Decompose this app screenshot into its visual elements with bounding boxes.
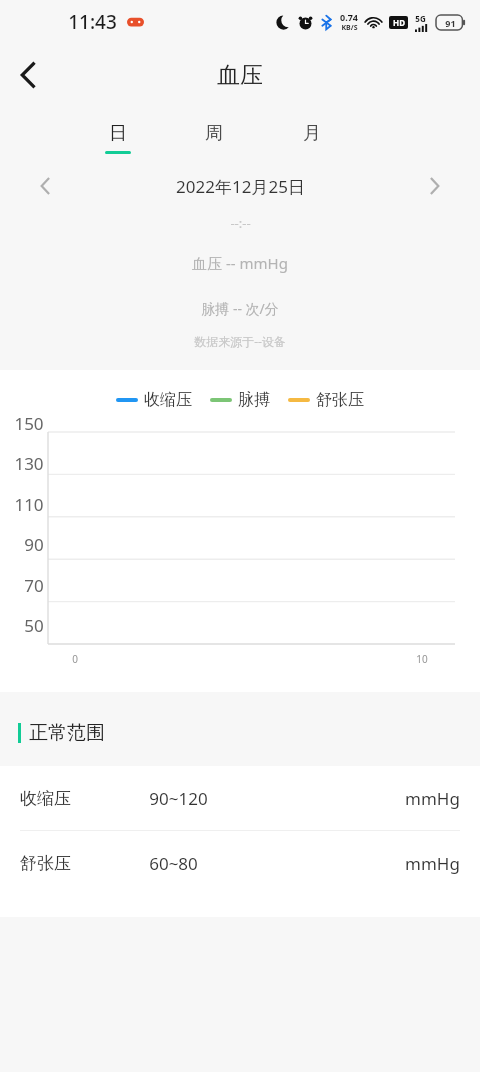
button[interactable]: 舒张压 (288, 390, 364, 410)
button[interactable]: Previous day (0, 166, 90, 206)
staticText: 5G (415, 13, 426, 24)
staticText: 血压 -- mmHg (192, 253, 288, 273)
button[interactable]: 脉搏 (210, 390, 270, 410)
staticText: KB/S (341, 23, 358, 33)
button[interactable]: 舒张压 (0, 831, 480, 895)
staticText: 脉搏 -- 次/分 (201, 299, 279, 318)
staticText: 150 (14, 412, 44, 432)
button[interactable]: 收缩压 (116, 390, 192, 410)
staticText: 血压 (217, 61, 263, 90)
staticText: 脉搏 (238, 390, 270, 410)
staticText: 收缩压 (20, 788, 71, 809)
staticText: 70 (24, 574, 44, 594)
staticText: 60~80 (149, 852, 198, 875)
staticText: HD (393, 17, 405, 28)
staticText: 90~120 (149, 787, 208, 810)
button[interactable]: 日 (96, 122, 140, 154)
staticText: --:-- (230, 214, 251, 232)
staticText: 2022年12月25日 (176, 175, 305, 198)
staticText: 91 (445, 17, 456, 29)
staticText: 90 (24, 533, 44, 553)
staticText: mmHg (405, 787, 460, 810)
staticText: 10 (416, 652, 428, 666)
staticText: 收缩压 (144, 390, 192, 410)
staticText: 月 (303, 122, 321, 145)
staticText: 数据来源于--设备 (194, 333, 286, 349)
staticText: 舒张压 (20, 853, 71, 874)
staticText: 110 (14, 493, 44, 513)
button[interactable]: Back (0, 47, 56, 103)
staticText: 0.74 (340, 11, 358, 23)
staticText: mmHg (405, 852, 460, 875)
button[interactable]: 收缩压 (0, 766, 480, 830)
staticText: 11:43 (68, 9, 117, 35)
button[interactable]: 月 (290, 122, 334, 154)
staticText: 130 (14, 452, 44, 472)
button[interactable]: Next day (390, 166, 480, 206)
staticText: 正常范围 (29, 721, 105, 745)
staticText: 0 (72, 652, 78, 666)
staticText: 舒张压 (316, 390, 364, 410)
staticText: 50 (24, 614, 44, 634)
button[interactable]: 周 (192, 122, 236, 154)
staticText: 日 (109, 122, 127, 145)
staticText: 周 (205, 122, 223, 145)
